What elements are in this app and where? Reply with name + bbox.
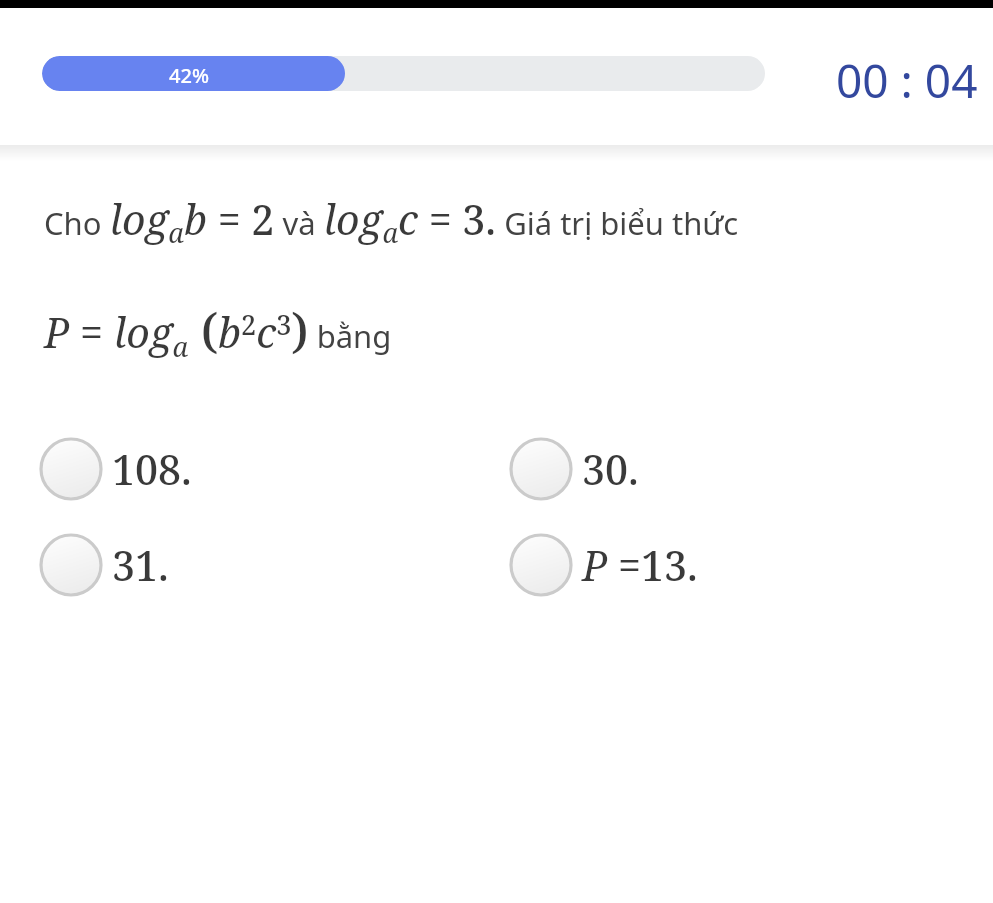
button[interactable]: 30. xyxy=(470,421,940,517)
staticText: 31. xyxy=(112,537,169,593)
button[interactable]: 108. xyxy=(0,421,470,517)
staticText: 42% xyxy=(169,62,209,89)
button[interactable]: 31. xyxy=(0,517,470,613)
staticText: 108. xyxy=(112,441,192,497)
staticText: 30. xyxy=(582,441,639,497)
staticText: P =13. xyxy=(582,537,698,593)
staticText: 00 : 04 xyxy=(836,49,978,112)
staticText: Cho logab = 2 và logac = 3. Giá trị biểu… xyxy=(44,191,739,251)
button[interactable]: P =13. xyxy=(470,517,940,613)
staticText: P = loga (b2c3) bằng xyxy=(44,297,392,365)
button[interactable]: 42% xyxy=(42,56,765,91)
